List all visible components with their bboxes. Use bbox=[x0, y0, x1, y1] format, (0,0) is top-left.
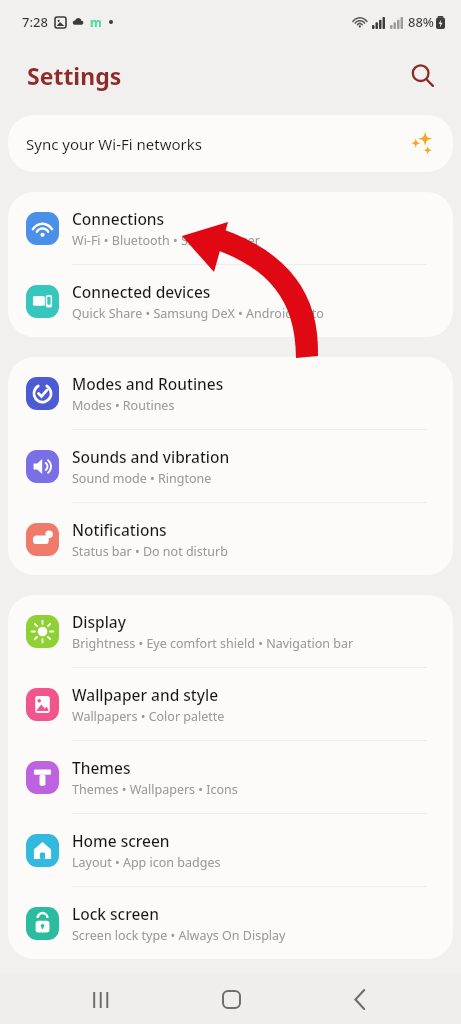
staticText: m bbox=[90, 14, 102, 30]
staticText: Connections bbox=[72, 208, 165, 229]
staticText: Notifications bbox=[72, 519, 167, 540]
button[interactable]: Display bbox=[8, 595, 453, 667]
button[interactable]: Themes bbox=[8, 741, 453, 813]
staticText: Connected devices bbox=[72, 281, 211, 302]
button[interactable]: Lock screen bbox=[8, 887, 453, 959]
staticText: Wallpaper and style bbox=[72, 684, 219, 705]
staticText: Home screen bbox=[72, 830, 170, 851]
button[interactable]: Modes and Routines bbox=[8, 357, 453, 429]
button[interactable]: Connections bbox=[8, 192, 453, 264]
button[interactable]: Search bbox=[401, 54, 443, 96]
staticText: Lock screen bbox=[72, 903, 159, 924]
button[interactable]: Connected devices bbox=[8, 265, 453, 337]
button[interactable]: Sync your Wi-Fi networks bbox=[8, 115, 453, 172]
staticText: Settings bbox=[27, 60, 122, 91]
staticText: Sound mode • Ringtone bbox=[72, 470, 212, 487]
staticText: Sounds and vibration bbox=[72, 446, 230, 467]
button[interactable]: Sounds and vibration bbox=[8, 430, 453, 502]
staticText: Status bar • Do not disturb bbox=[72, 543, 228, 560]
staticText: Modes and Routines bbox=[72, 373, 224, 394]
staticText: 7:28 bbox=[22, 13, 48, 31]
staticText: Modes • Routines bbox=[72, 397, 175, 414]
staticText: Themes bbox=[72, 757, 131, 778]
button[interactable]: Back bbox=[332, 975, 388, 1024]
button[interactable]: Recents bbox=[73, 975, 129, 1024]
staticText: 88% bbox=[408, 13, 434, 31]
staticText: Quick Share • Samsung DeX • Android Auto bbox=[72, 305, 324, 322]
staticText: Wallpapers • Color palette bbox=[72, 708, 225, 725]
staticText: Screen lock type • Always On Display bbox=[72, 927, 286, 944]
staticText: Display bbox=[72, 611, 126, 632]
button[interactable]: Home screen bbox=[8, 814, 453, 886]
staticText: Sync your Wi-Fi networks bbox=[26, 134, 409, 154]
button[interactable]: Home bbox=[203, 975, 259, 1024]
staticText: Wi-Fi • Bluetooth • SIM manager bbox=[72, 232, 261, 249]
staticText: Brightness • Eye comfort shield • Naviga… bbox=[72, 635, 354, 652]
staticText: Layout • App icon badges bbox=[72, 854, 221, 871]
button[interactable]: Notifications bbox=[8, 503, 453, 575]
button[interactable]: Wallpaper and style bbox=[8, 668, 453, 740]
staticText: Themes • Wallpapers • Icons bbox=[72, 781, 238, 798]
